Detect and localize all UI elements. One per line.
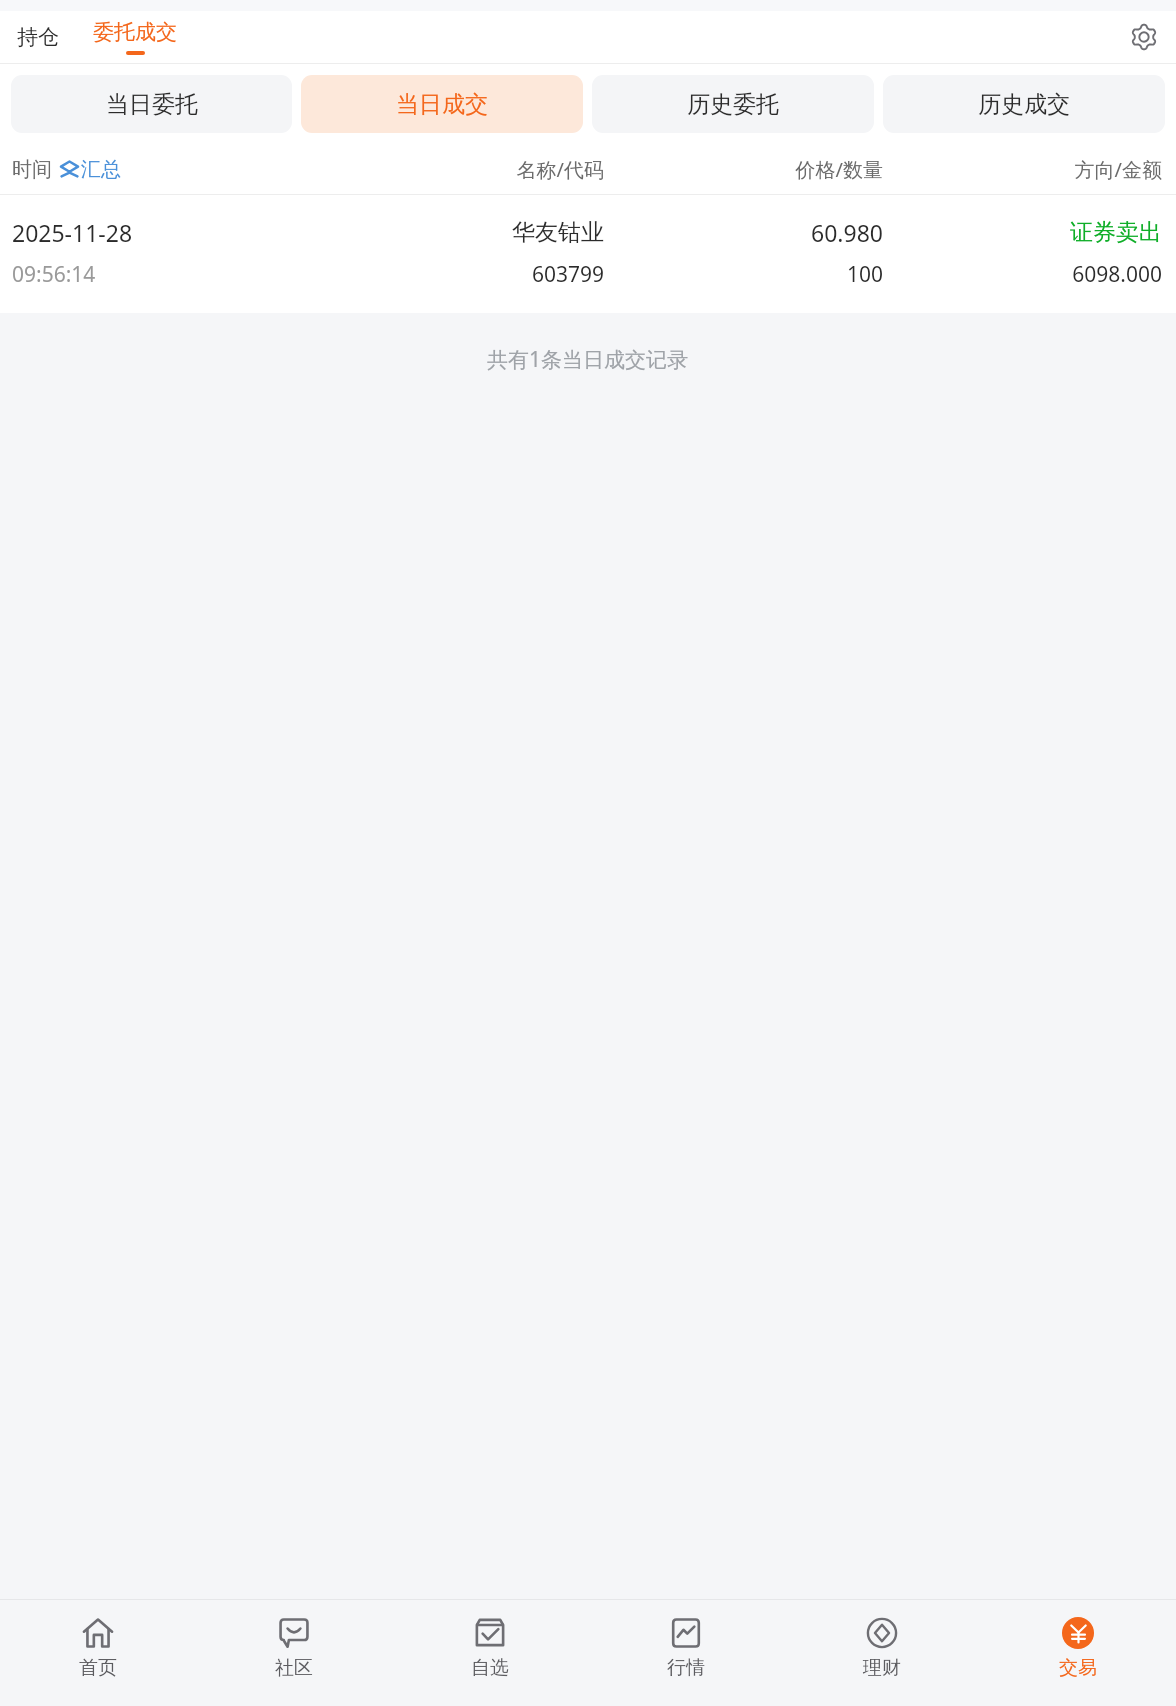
button[interactable]: 委托成交 bbox=[89, 19, 181, 55]
staticText: 历史成交 bbox=[978, 90, 1070, 119]
staticText: 持仓 bbox=[17, 24, 59, 50]
button[interactable]: 行情 bbox=[588, 1617, 784, 1680]
button[interactable]: 首页 bbox=[0, 1617, 196, 1680]
button[interactable]: 理财 bbox=[784, 1617, 980, 1680]
staticText: 首页 bbox=[79, 1656, 117, 1680]
staticText: 历史委托 bbox=[687, 90, 779, 119]
staticText: 证券卖出 bbox=[883, 218, 1162, 247]
staticText: 时间 bbox=[12, 157, 52, 182]
staticText: 方向/金额 bbox=[883, 156, 1162, 183]
button[interactable]: 持仓 bbox=[9, 20, 67, 54]
button[interactable]: 当日成交 bbox=[301, 75, 583, 133]
button[interactable]: 交易 bbox=[980, 1617, 1176, 1680]
button[interactable]: 自选 bbox=[392, 1617, 588, 1680]
button[interactable]: 当日委托 bbox=[11, 75, 292, 133]
staticText: 6098.000 bbox=[883, 260, 1162, 289]
staticText: 100 bbox=[604, 260, 883, 289]
button[interactable]: 社区 bbox=[196, 1617, 392, 1680]
staticText: 行情 bbox=[667, 1656, 705, 1680]
staticText: 华友钴业 bbox=[325, 218, 604, 247]
staticText: 60.980 bbox=[604, 217, 883, 248]
staticText: 当日委托 bbox=[106, 90, 198, 119]
button[interactable]: Settings bbox=[1122, 15, 1166, 59]
staticText: 共有1条当日成交记录 bbox=[487, 345, 689, 374]
staticText: 价格/数量 bbox=[604, 156, 883, 183]
staticText: 委托成交 bbox=[93, 19, 177, 45]
staticText: 当日成交 bbox=[396, 90, 488, 119]
staticText: 社区 bbox=[275, 1656, 313, 1680]
staticText: 汇总 bbox=[81, 157, 121, 182]
staticText: 09:56:14 bbox=[12, 260, 325, 289]
staticText: 2025-11-28 bbox=[12, 217, 325, 248]
staticText: 理财 bbox=[863, 1656, 901, 1680]
button[interactable]: 2025-11-28 bbox=[0, 195, 1176, 313]
staticText: 名称/代码 bbox=[325, 156, 604, 183]
staticText: 自选 bbox=[471, 1656, 509, 1680]
button[interactable]: 历史成交 bbox=[883, 75, 1165, 133]
staticText: 603799 bbox=[325, 260, 604, 289]
button[interactable]: 历史委托 bbox=[592, 75, 874, 133]
staticText: 交易 bbox=[1059, 1656, 1097, 1680]
button[interactable]: 时间 bbox=[12, 157, 325, 182]
